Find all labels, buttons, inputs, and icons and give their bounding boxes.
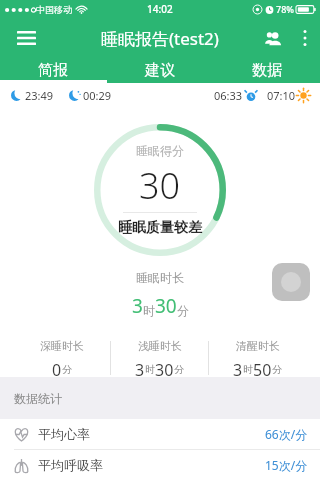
staticText: 睡眠报告(test2) [101, 27, 219, 50]
staticText: 23:49 [25, 88, 54, 103]
button[interactable]: 平均心率 [0, 419, 320, 449]
staticText: 清醒时长 [236, 339, 280, 353]
staticText: 分 [272, 363, 282, 376]
staticText: 78% [276, 3, 294, 15]
staticText: 30 [155, 293, 177, 319]
staticText: 建议 [145, 61, 175, 80]
staticText: 分 [177, 303, 189, 318]
staticText: 14:02 [147, 2, 173, 16]
button[interactable]: Friends [256, 21, 290, 55]
staticText: 时 [143, 303, 155, 318]
staticText: 3 [132, 293, 143, 319]
staticText: 深睡时长 [40, 339, 84, 353]
button[interactable]: 数据 [213, 58, 320, 83]
button[interactable]: 建议 [106, 58, 213, 83]
staticText: 时 [145, 363, 155, 376]
staticText: 简报 [38, 61, 68, 80]
staticText: 睡眠质量较差 [118, 219, 202, 237]
staticText: 00:29 [83, 88, 112, 103]
staticText: 30 [139, 161, 181, 210]
button[interactable]: Record [272, 263, 310, 301]
staticText: 15次/分 [265, 457, 308, 473]
staticText: 分 [62, 363, 72, 376]
button[interactable]: 简报 [0, 58, 106, 83]
staticText: 平均心率 [38, 426, 90, 442]
staticText: 30 [155, 359, 174, 377]
button[interactable]: More options [290, 23, 320, 53]
staticText: 66次/分 [265, 426, 308, 442]
staticText: 3 [135, 359, 145, 377]
staticText: 数据 [252, 61, 282, 80]
staticText: 3 [233, 359, 243, 377]
staticText: 平均呼吸率 [38, 457, 103, 473]
staticText: 06:33 [214, 88, 243, 103]
button[interactable]: Menu [8, 20, 44, 56]
staticText: 07:10 [267, 88, 296, 103]
button[interactable]: 平均呼吸率 [0, 450, 320, 480]
staticText: 中国移动 [36, 4, 72, 15]
staticText: 0 [52, 359, 62, 377]
staticText: 时 [243, 363, 253, 376]
staticText: 睡眠时长 [136, 270, 184, 285]
staticText: 浅睡时长 [138, 339, 182, 353]
staticText: 睡眠得分 [136, 143, 184, 158]
staticText: 分 [174, 363, 184, 376]
staticText: 50 [253, 359, 272, 377]
staticText: 数据统计 [14, 391, 62, 406]
